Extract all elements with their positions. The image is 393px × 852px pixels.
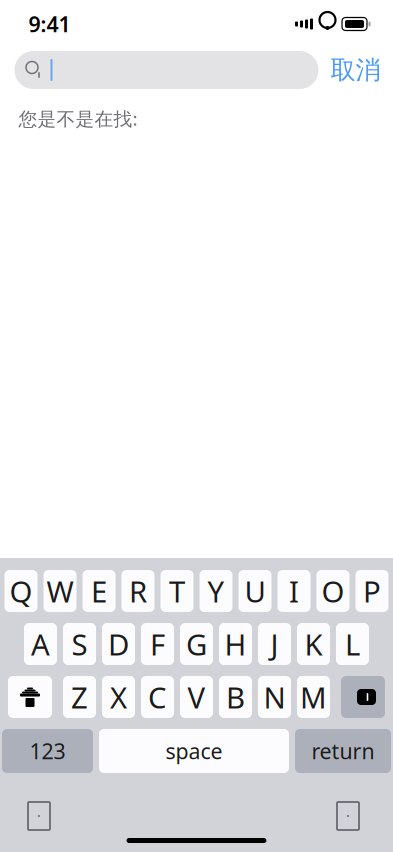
staticText: V [187,677,205,716]
button[interactable]: D [102,623,135,665]
button[interactable]: O [316,570,349,612]
staticText: R [129,571,147,610]
staticText: L [345,624,360,663]
staticText: F [150,624,165,663]
staticText: 123 [29,737,65,765]
staticText: P [363,571,381,610]
staticText: 9:41 [28,10,70,38]
button[interactable]: J [258,623,291,665]
button[interactable]: Delete [341,676,385,718]
button[interactable]: Z [63,676,96,718]
button[interactable]: Dictation [337,802,359,830]
staticText: H [224,624,246,663]
button[interactable]: E [82,570,115,612]
button[interactable]: Y [199,570,232,612]
button[interactable]: Emoji [28,802,50,830]
button[interactable]: N [258,676,291,718]
button[interactable]: M [297,676,330,718]
staticText: I [289,571,299,610]
staticText: Z [71,677,88,716]
button[interactable]: Shift [8,676,52,718]
staticText: E [91,571,107,610]
staticText: N [263,677,285,716]
staticText: D [108,624,129,663]
button[interactable]: B [219,676,252,718]
staticText: W [46,571,73,610]
staticText: A [31,624,50,663]
staticText: T [169,571,185,610]
staticText: X [110,677,127,716]
button[interactable]: R [121,570,154,612]
staticText: C [148,677,167,716]
staticText: 您是不是在找: [18,106,137,131]
button[interactable]: A [24,623,57,665]
staticText: return [311,737,374,765]
button[interactable]: G [180,623,213,665]
button[interactable]: Q [4,570,37,612]
button[interactable]: W [43,570,76,612]
staticText: Q [9,571,32,610]
staticText: space [165,737,222,765]
button[interactable]: L [336,623,369,665]
button[interactable]: 123 [2,729,93,773]
button[interactable]: 取消 [330,54,380,85]
button[interactable] [14,51,318,89]
staticText: Y [207,571,224,610]
staticText: J [270,624,278,663]
button[interactable]: T [160,570,193,612]
staticText: G [186,624,207,663]
staticText: B [226,677,245,716]
button[interactable]: P [355,570,388,612]
staticText: M [300,677,327,716]
button[interactable]: F [141,623,174,665]
button[interactable]: V [180,676,213,718]
button[interactable]: C [141,676,174,718]
button[interactable]: K [297,623,330,665]
button[interactable]: H [219,623,252,665]
staticText: K [304,624,322,663]
button[interactable]: U [238,570,271,612]
staticText: O [321,571,344,610]
staticText: U [244,571,265,610]
button[interactable]: S [63,623,96,665]
button[interactable]: X [102,676,135,718]
button[interactable]: space [99,729,289,773]
staticText: 取消 [330,54,380,85]
button[interactable]: return [295,729,391,773]
staticText: S [71,624,87,663]
button[interactable]: I [277,570,310,612]
